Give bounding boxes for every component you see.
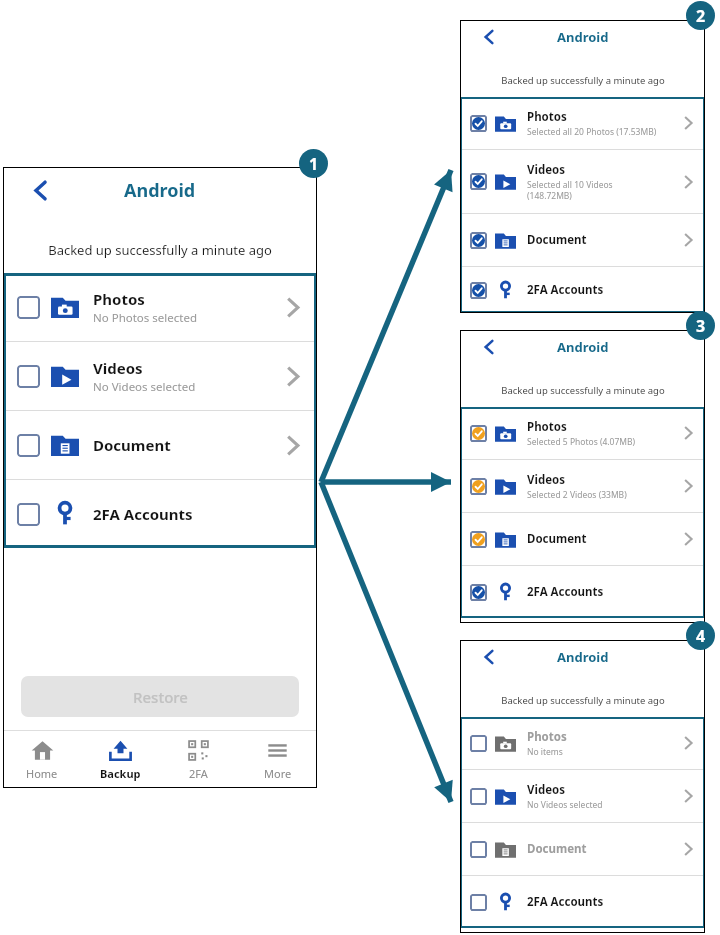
button[interactable]: Toggle selection: [3, 342, 317, 410]
button[interactable]: Toggle selection: [3, 411, 317, 479]
staticText: Selected all 10 Videos (148.72MB): [527, 179, 613, 201]
staticText: Backed up successfully a minute ago: [48, 241, 272, 259]
button[interactable]: Toggle selection: [470, 531, 487, 548]
staticText: Android: [557, 28, 609, 46]
staticText: 2FA Accounts: [527, 894, 604, 910]
staticText: More: [264, 766, 292, 781]
button[interactable]: Back: [476, 644, 502, 670]
staticText: 1: [309, 153, 319, 175]
button[interactable]: Back: [476, 334, 502, 360]
staticText: Document: [93, 435, 171, 455]
staticText: No Photos selected: [93, 310, 197, 326]
button[interactable]: Toggle selection: [3, 273, 317, 341]
button[interactable]: Toggle selection: [460, 214, 705, 266]
button[interactable]: Restore: [21, 676, 299, 717]
button[interactable]: Toggle selection: [3, 480, 317, 548]
button[interactable]: Toggle selection: [470, 788, 487, 805]
button[interactable]: Toggle selection: [17, 296, 40, 319]
button[interactable]: Toggle selection: [460, 407, 705, 459]
staticText: Android: [557, 338, 609, 356]
staticText: 2FA Accounts: [527, 584, 604, 600]
button[interactable]: Toggle selection: [460, 717, 705, 769]
staticText: Document: [527, 531, 587, 547]
button[interactable]: Toggle selection: [460, 460, 705, 512]
staticText: Document: [527, 232, 587, 248]
button[interactable]: Toggle selection: [470, 478, 487, 495]
button[interactable]: Toggle selection: [460, 97, 705, 149]
staticText: Document: [527, 841, 587, 857]
button[interactable]: Toggle selection: [460, 150, 705, 213]
button[interactable]: Toggle selection: [460, 770, 705, 822]
staticText: 2FA: [189, 766, 208, 781]
button[interactable]: Toggle selection: [470, 735, 487, 752]
staticText: 3: [696, 315, 706, 337]
staticText: 2FA Accounts: [527, 282, 604, 298]
staticText: Backed up successfully a minute ago: [501, 384, 665, 397]
button[interactable]: Toggle selection: [460, 267, 705, 313]
staticText: Backed up successfully a minute ago: [501, 694, 665, 707]
staticText: 4: [696, 625, 706, 647]
staticText: Videos: [527, 162, 566, 178]
staticText: No Videos selected: [93, 379, 196, 395]
staticText: Videos: [527, 782, 566, 798]
staticText: Photos: [527, 419, 567, 435]
staticText: Selected 5 Photos (4.07MB): [527, 436, 636, 448]
button[interactable]: 2FA: [159, 731, 238, 788]
button[interactable]: Toggle selection: [460, 876, 705, 928]
staticText: Selected 2 Videos (33MB): [527, 489, 627, 501]
staticText: Restore: [133, 687, 188, 707]
button[interactable]: Toggle selection: [17, 365, 40, 388]
staticText: Android: [557, 648, 609, 666]
button[interactable]: Toggle selection: [470, 282, 487, 299]
button[interactable]: Toggle selection: [460, 513, 705, 565]
staticText: No Videos selected: [527, 799, 603, 811]
staticText: Photos: [527, 729, 567, 745]
staticText: No items: [527, 746, 563, 758]
button[interactable]: Home: [3, 731, 81, 788]
button[interactable]: Toggle selection: [17, 503, 40, 526]
button[interactable]: Toggle selection: [470, 894, 487, 911]
button[interactable]: Toggle selection: [470, 584, 487, 601]
staticText: Photos: [93, 289, 145, 309]
staticText: Backed up successfully a minute ago: [501, 74, 665, 87]
staticText: 2FA Accounts: [93, 504, 193, 524]
staticText: Backup: [100, 766, 141, 781]
button[interactable]: More: [238, 731, 317, 788]
button[interactable]: Toggle selection: [460, 823, 705, 875]
button[interactable]: Toggle selection: [470, 115, 487, 132]
staticText: Android: [124, 178, 196, 203]
button[interactable]: Toggle selection: [470, 173, 487, 190]
staticText: Selected all 20 Photos (17.53MB): [527, 126, 657, 138]
button[interactable]: Backup: [81, 731, 159, 788]
button[interactable]: Toggle selection: [17, 434, 40, 457]
button[interactable]: Back: [23, 173, 57, 207]
button[interactable]: Toggle selection: [470, 425, 487, 442]
staticText: Home: [26, 766, 58, 781]
button[interactable]: Toggle selection: [470, 841, 487, 858]
staticText: Videos: [527, 472, 566, 488]
button[interactable]: Back: [476, 24, 502, 50]
button[interactable]: Toggle selection: [470, 232, 487, 249]
staticText: Videos: [93, 358, 143, 378]
staticText: Photos: [527, 109, 567, 125]
button[interactable]: Toggle selection: [460, 566, 705, 618]
staticText: 2: [696, 5, 706, 27]
